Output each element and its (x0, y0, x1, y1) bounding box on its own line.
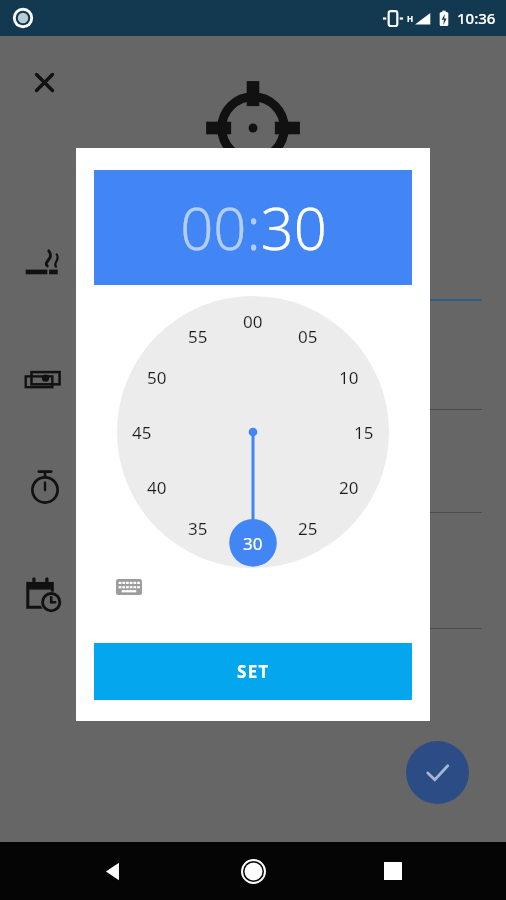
button[interactable]: Confirm (406, 741, 469, 804)
button[interactable]: 35 (180, 510, 216, 546)
button[interactable]: 00:30 (94, 170, 412, 285)
button[interactable]: Back (86, 844, 140, 898)
staticText: 05 (298, 325, 318, 348)
staticText: 00:30 (180, 188, 327, 267)
button[interactable]: Switch to keyboard input (112, 570, 146, 604)
button[interactable]: 50 (139, 359, 175, 395)
staticText: 10:36 (457, 8, 496, 28)
button[interactable]: 20 (331, 469, 367, 505)
button[interactable]: Recent apps (366, 844, 420, 898)
button[interactable]: 05 (290, 318, 326, 354)
button[interactable]: 25 (290, 510, 326, 546)
staticText: 00 (243, 310, 263, 333)
staticText: 20 (339, 476, 359, 499)
button[interactable]: 30 (235, 525, 271, 561)
staticText: 15 (354, 421, 374, 444)
staticText: 10 (339, 366, 359, 389)
button[interactable]: 40 (139, 469, 175, 505)
button[interactable]: 10 (331, 359, 367, 395)
button[interactable]: 45 (124, 414, 160, 450)
staticText: 35 (188, 517, 208, 540)
staticText: 55 (188, 325, 208, 348)
button[interactable]: Home (226, 844, 280, 898)
staticText: 50 (147, 366, 167, 389)
staticText: 45 (132, 421, 152, 444)
staticText: 25 (298, 517, 318, 540)
staticText: 40 (147, 476, 167, 499)
button[interactable]: 55 (180, 318, 216, 354)
button[interactable]: SET (94, 643, 412, 700)
staticText: SET (237, 660, 270, 683)
staticText: H (407, 13, 414, 24)
button[interactable]: 00 (235, 303, 271, 339)
button[interactable]: 15 (346, 414, 382, 450)
button[interactable]: Close (25, 63, 63, 101)
staticText: 30 (243, 532, 263, 555)
